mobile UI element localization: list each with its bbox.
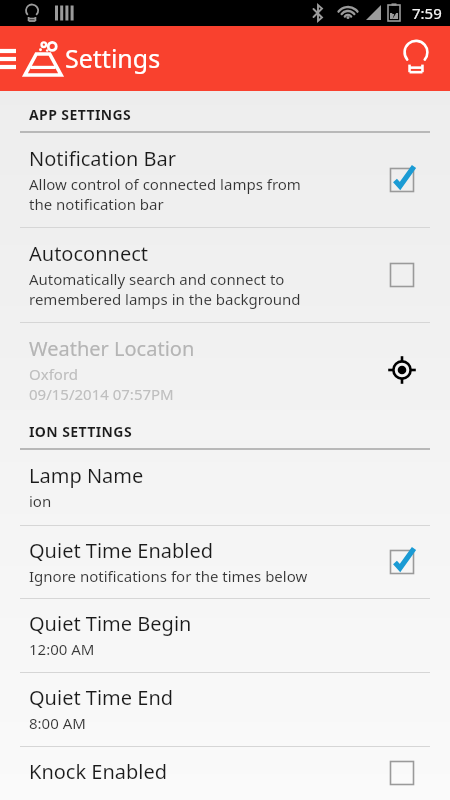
button[interactable]: Weather Location	[0, 323, 450, 414]
button[interactable]: Autoconnect	[0, 228, 450, 322]
staticText: Ignore notifications for the times below	[29, 566, 308, 586]
staticText: 8:00 AM	[29, 713, 86, 733]
staticText: Lamp Name	[29, 462, 144, 489]
staticText: Notification Bar	[29, 145, 177, 172]
button[interactable]: Quiet Time Enabled	[0, 526, 450, 598]
staticText: APP SETTINGS	[29, 105, 132, 124]
staticText: Quiet Time End	[29, 684, 174, 711]
button[interactable]: Quiet Time Begin	[0, 599, 450, 672]
button[interactable]: Unchecked	[385, 758, 419, 788]
staticText: Automatically search and connect to reme…	[29, 269, 301, 309]
button[interactable]: Open navigation menu	[0, 41, 28, 77]
staticText: Autoconnect	[29, 240, 148, 267]
staticText: Settings	[65, 41, 161, 75]
button[interactable]: Quiet Time End	[0, 673, 450, 746]
button[interactable]: Knock Enabled	[0, 747, 450, 800]
button[interactable]: Use current location	[383, 351, 421, 389]
button[interactable]: Lamp power	[394, 37, 438, 81]
staticText: Quiet Time Begin	[29, 610, 192, 637]
staticText: ION SETTINGS	[29, 422, 133, 441]
staticText: ion	[29, 491, 52, 511]
staticText: 12:00 AM	[29, 639, 95, 659]
staticText: Allow control of connected lamps from th…	[29, 174, 301, 214]
button[interactable]: Unchecked	[385, 258, 419, 292]
button[interactable]: Checked	[385, 545, 419, 579]
staticText: Weather Location	[29, 335, 195, 362]
button[interactable]: Checked	[385, 163, 419, 197]
staticText: Quiet Time Enabled	[29, 537, 214, 564]
staticText: Knock Enabled	[29, 758, 168, 785]
staticText: Oxford 09/15/2014 07:57PM	[29, 364, 174, 404]
staticText: 7:59	[412, 3, 442, 23]
button[interactable]: Lamp Name	[0, 450, 450, 525]
button[interactable]: Notification Bar	[0, 133, 450, 227]
